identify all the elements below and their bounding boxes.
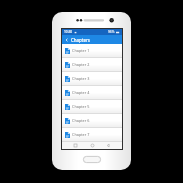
button[interactable]: Recents (72, 142, 79, 149)
button[interactable]: Back (105, 142, 112, 149)
staticText: Chapter 5 (72, 104, 90, 109)
button[interactable]: Chapter 4 (62, 86, 122, 99)
staticText: 10:30 (64, 30, 73, 34)
button[interactable]: Chapter 3 (62, 72, 122, 85)
button[interactable]: Chapter 7 (62, 128, 122, 141)
staticText: Chapter 7 (72, 132, 90, 137)
button[interactable]: Chapter 6 (62, 114, 122, 127)
staticText: Chapter 1 (72, 48, 90, 53)
button[interactable]: Home (89, 142, 96, 149)
staticText: Chapters (71, 37, 90, 43)
staticText: Chapter 6 (72, 118, 90, 123)
button[interactable]: Chapter 5 (62, 100, 122, 113)
button[interactable]: Chapter 1 (62, 44, 122, 57)
staticText: Chapter 2 (72, 62, 90, 67)
button[interactable]: Back (62, 35, 71, 44)
staticText: Chapter 3 (72, 76, 90, 81)
button[interactable]: Chapter 2 (62, 58, 122, 71)
staticText: 96% (108, 30, 115, 34)
staticText: Chapter 4 (72, 90, 90, 95)
